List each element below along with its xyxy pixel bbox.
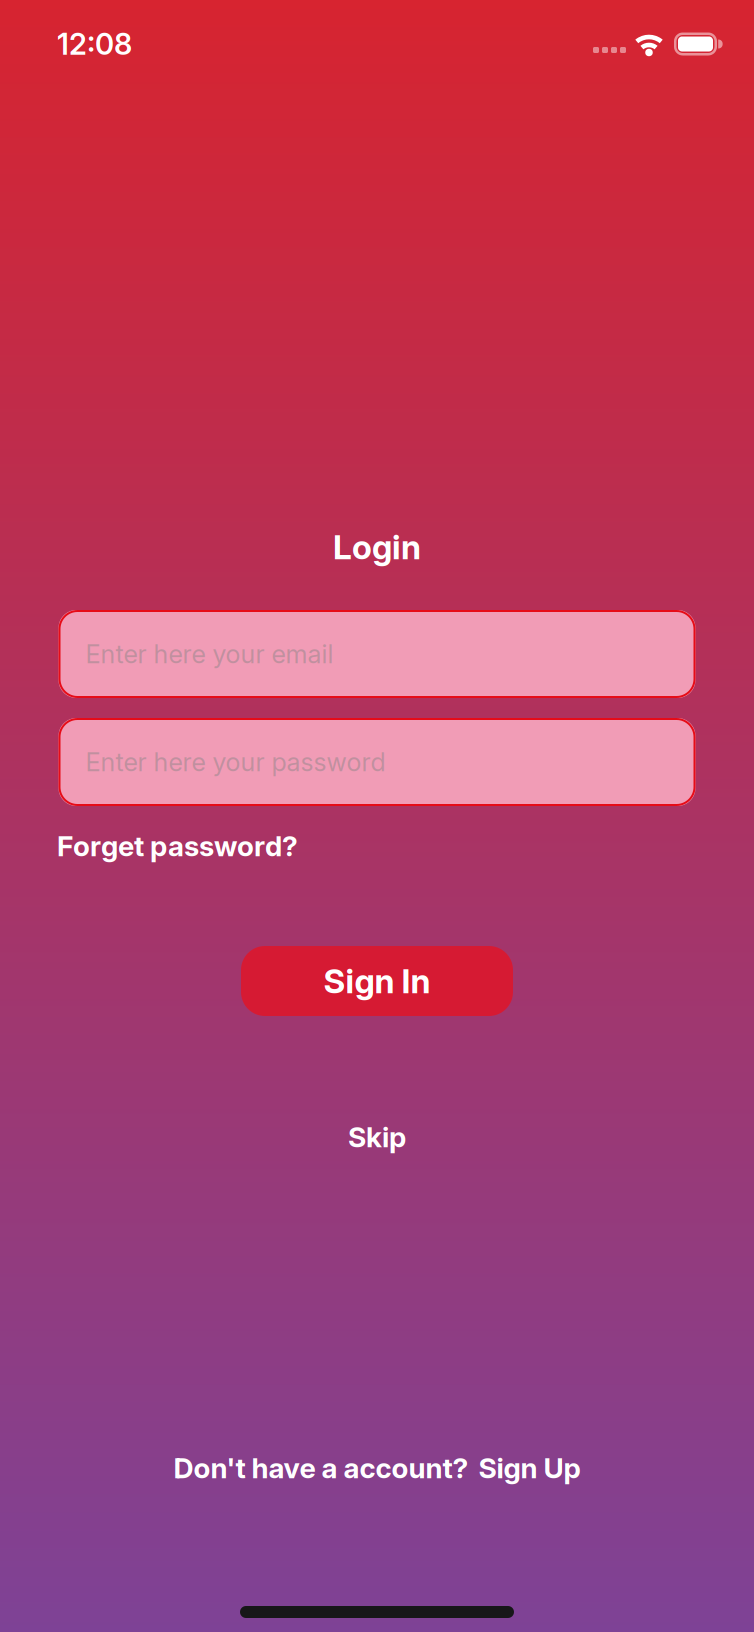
button[interactable]: Sign Up [478, 1451, 580, 1484]
staticText: Don't have a account? [173, 1451, 468, 1484]
button[interactable]: Sign In [241, 946, 513, 1016]
staticText: Sign In [323, 961, 430, 1001]
staticText: Forget password? [57, 829, 298, 862]
staticText: Enter here your password [85, 747, 385, 777]
staticText: Login [333, 527, 421, 567]
staticText: Sign Up [478, 1451, 580, 1484]
button[interactable]: Enter here your password [58, 718, 695, 806]
button[interactable]: Enter here your email [58, 610, 695, 698]
staticText: Skip [348, 1120, 406, 1153]
staticText: 12:08 [57, 27, 132, 61]
button[interactable]: Skip [348, 1117, 406, 1157]
staticText: Enter here your email [85, 639, 333, 669]
button[interactable]: Forget password? [57, 824, 298, 868]
